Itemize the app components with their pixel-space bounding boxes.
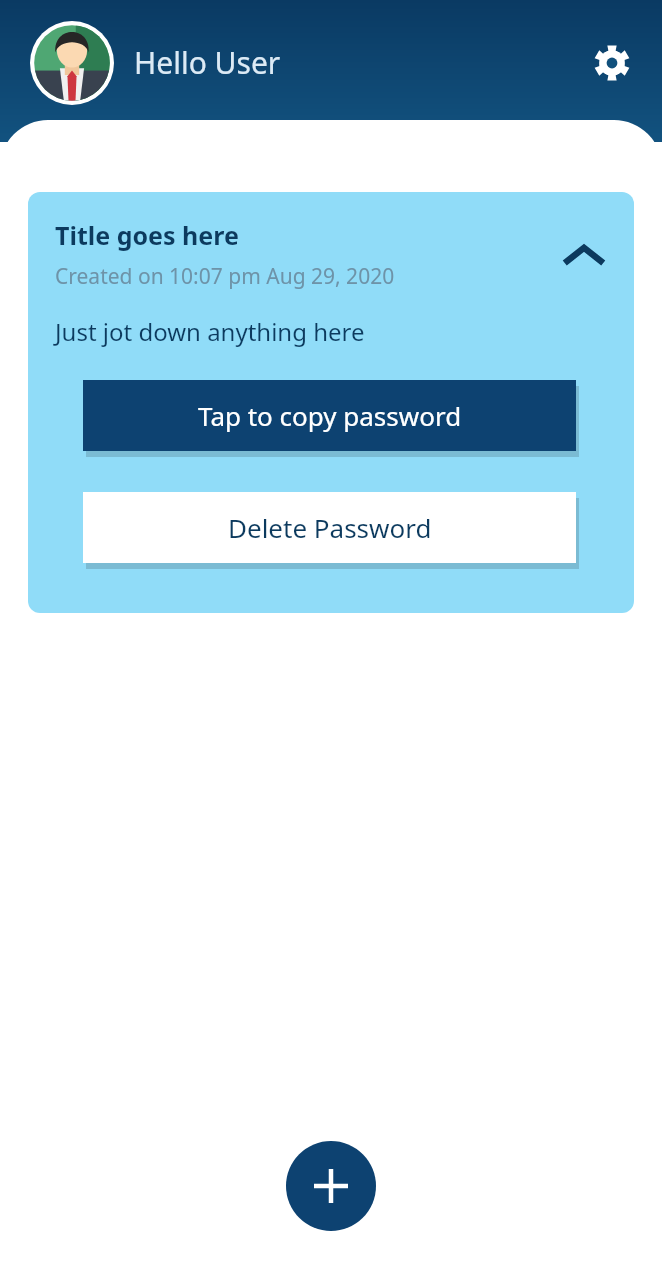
button[interactable]: Tap to copy password	[83, 380, 576, 451]
staticText: Tap to copy password	[198, 398, 462, 433]
button[interactable]: Settings	[586, 37, 638, 89]
button[interactable]: Title goes here	[28, 192, 634, 613]
staticText: Title goes here	[55, 218, 239, 252]
staticText: Just jot down anything here	[55, 315, 365, 348]
button[interactable]: Add password	[286, 1141, 376, 1231]
button[interactable]: Profile	[30, 21, 114, 105]
staticText: Hello User	[134, 42, 281, 83]
button[interactable]: Collapse	[556, 227, 612, 283]
staticText: Created on 10:07 pm Aug 29, 2020	[55, 262, 395, 291]
button[interactable]: Delete Password	[83, 492, 576, 563]
staticText: Delete Password	[228, 510, 432, 545]
